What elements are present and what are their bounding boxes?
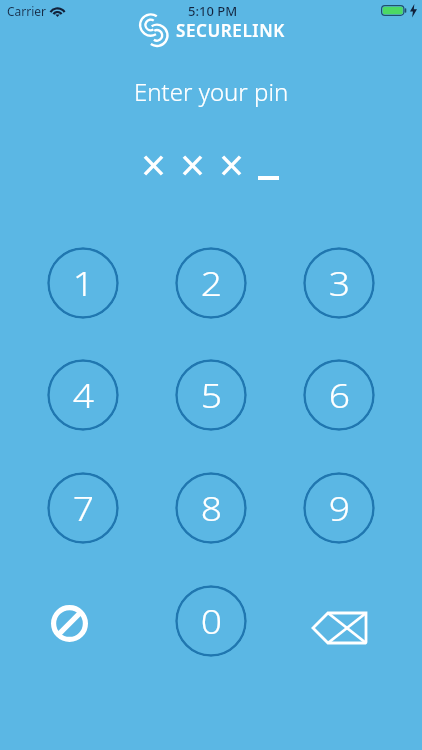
staticText: Enter your pin: [134, 75, 289, 108]
staticText: 1: [73, 261, 94, 306]
staticText: 9: [329, 486, 350, 531]
staticText: 7: [73, 486, 94, 531]
button[interactable]: 5: [175, 359, 247, 431]
button[interactable]: 3: [303, 247, 375, 319]
staticText: 5: [201, 373, 222, 418]
button[interactable]: 6: [303, 359, 375, 431]
button[interactable]: 2: [175, 247, 247, 319]
button[interactable]: 7: [47, 472, 119, 544]
button[interactable]: 8: [175, 472, 247, 544]
button[interactable]: Clear: [33, 585, 105, 657]
staticText: 6: [329, 373, 350, 418]
button[interactable]: 0: [175, 585, 247, 657]
button[interactable]: Backspace: [303, 585, 375, 657]
staticText: SECURELINK: [176, 19, 285, 42]
button[interactable]: 4: [47, 359, 119, 431]
staticText: 2: [201, 261, 222, 306]
staticText: 8: [201, 486, 222, 531]
button[interactable]: 1: [47, 247, 119, 319]
staticText: 4: [73, 373, 94, 418]
button[interactable]: 9: [303, 472, 375, 544]
staticText: 0: [201, 599, 222, 644]
staticText: 3: [329, 261, 350, 306]
staticText: 5:10 PM: [188, 2, 238, 20]
staticText: Carrier: [7, 3, 47, 19]
